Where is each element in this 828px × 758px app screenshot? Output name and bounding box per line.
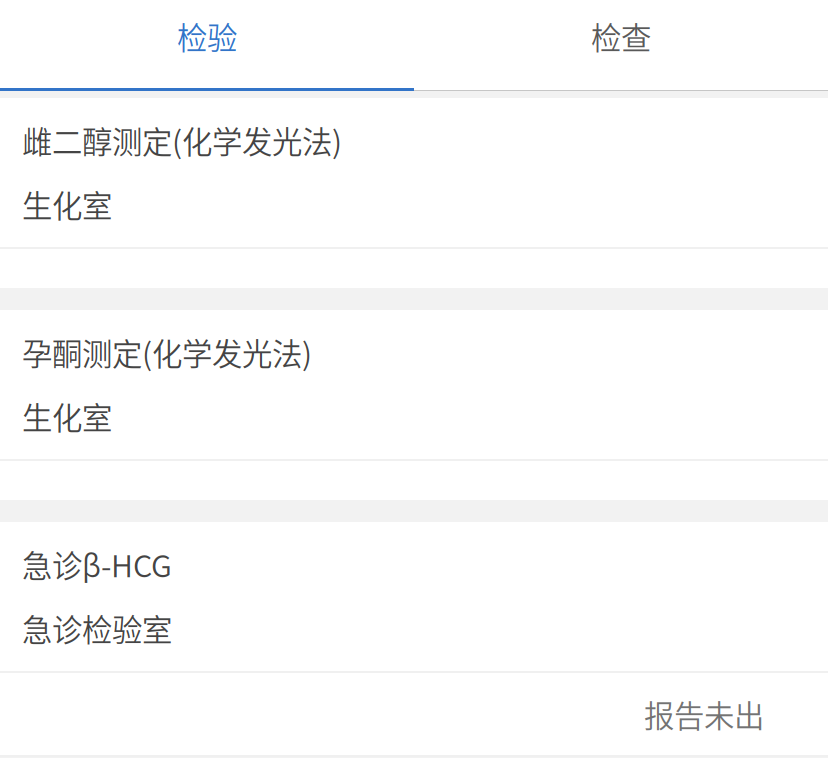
- button[interactable]: 检查: [414, 0, 828, 88]
- staticText: 生化室: [22, 394, 112, 438]
- button[interactable]: 报告未出: [0, 673, 828, 755]
- staticText: 雌二醇测定(化学发光法): [22, 118, 342, 162]
- staticText: 急诊检验室: [22, 606, 172, 650]
- button[interactable]: 雌二醇测定(化学发光法): [0, 98, 828, 247]
- button[interactable]: 检验: [0, 0, 414, 88]
- staticText: 急诊β-HCG: [22, 542, 172, 586]
- staticText: 报告未出: [644, 692, 764, 736]
- button[interactable]: 急诊β-HCG: [0, 522, 828, 671]
- button[interactable]: 孕酮测定(化学发光法): [0, 310, 828, 459]
- staticText: 检查: [591, 14, 651, 58]
- staticText: 孕酮测定(化学发光法): [22, 330, 312, 374]
- staticText: 生化室: [22, 182, 112, 226]
- staticText: 检验: [177, 14, 237, 58]
